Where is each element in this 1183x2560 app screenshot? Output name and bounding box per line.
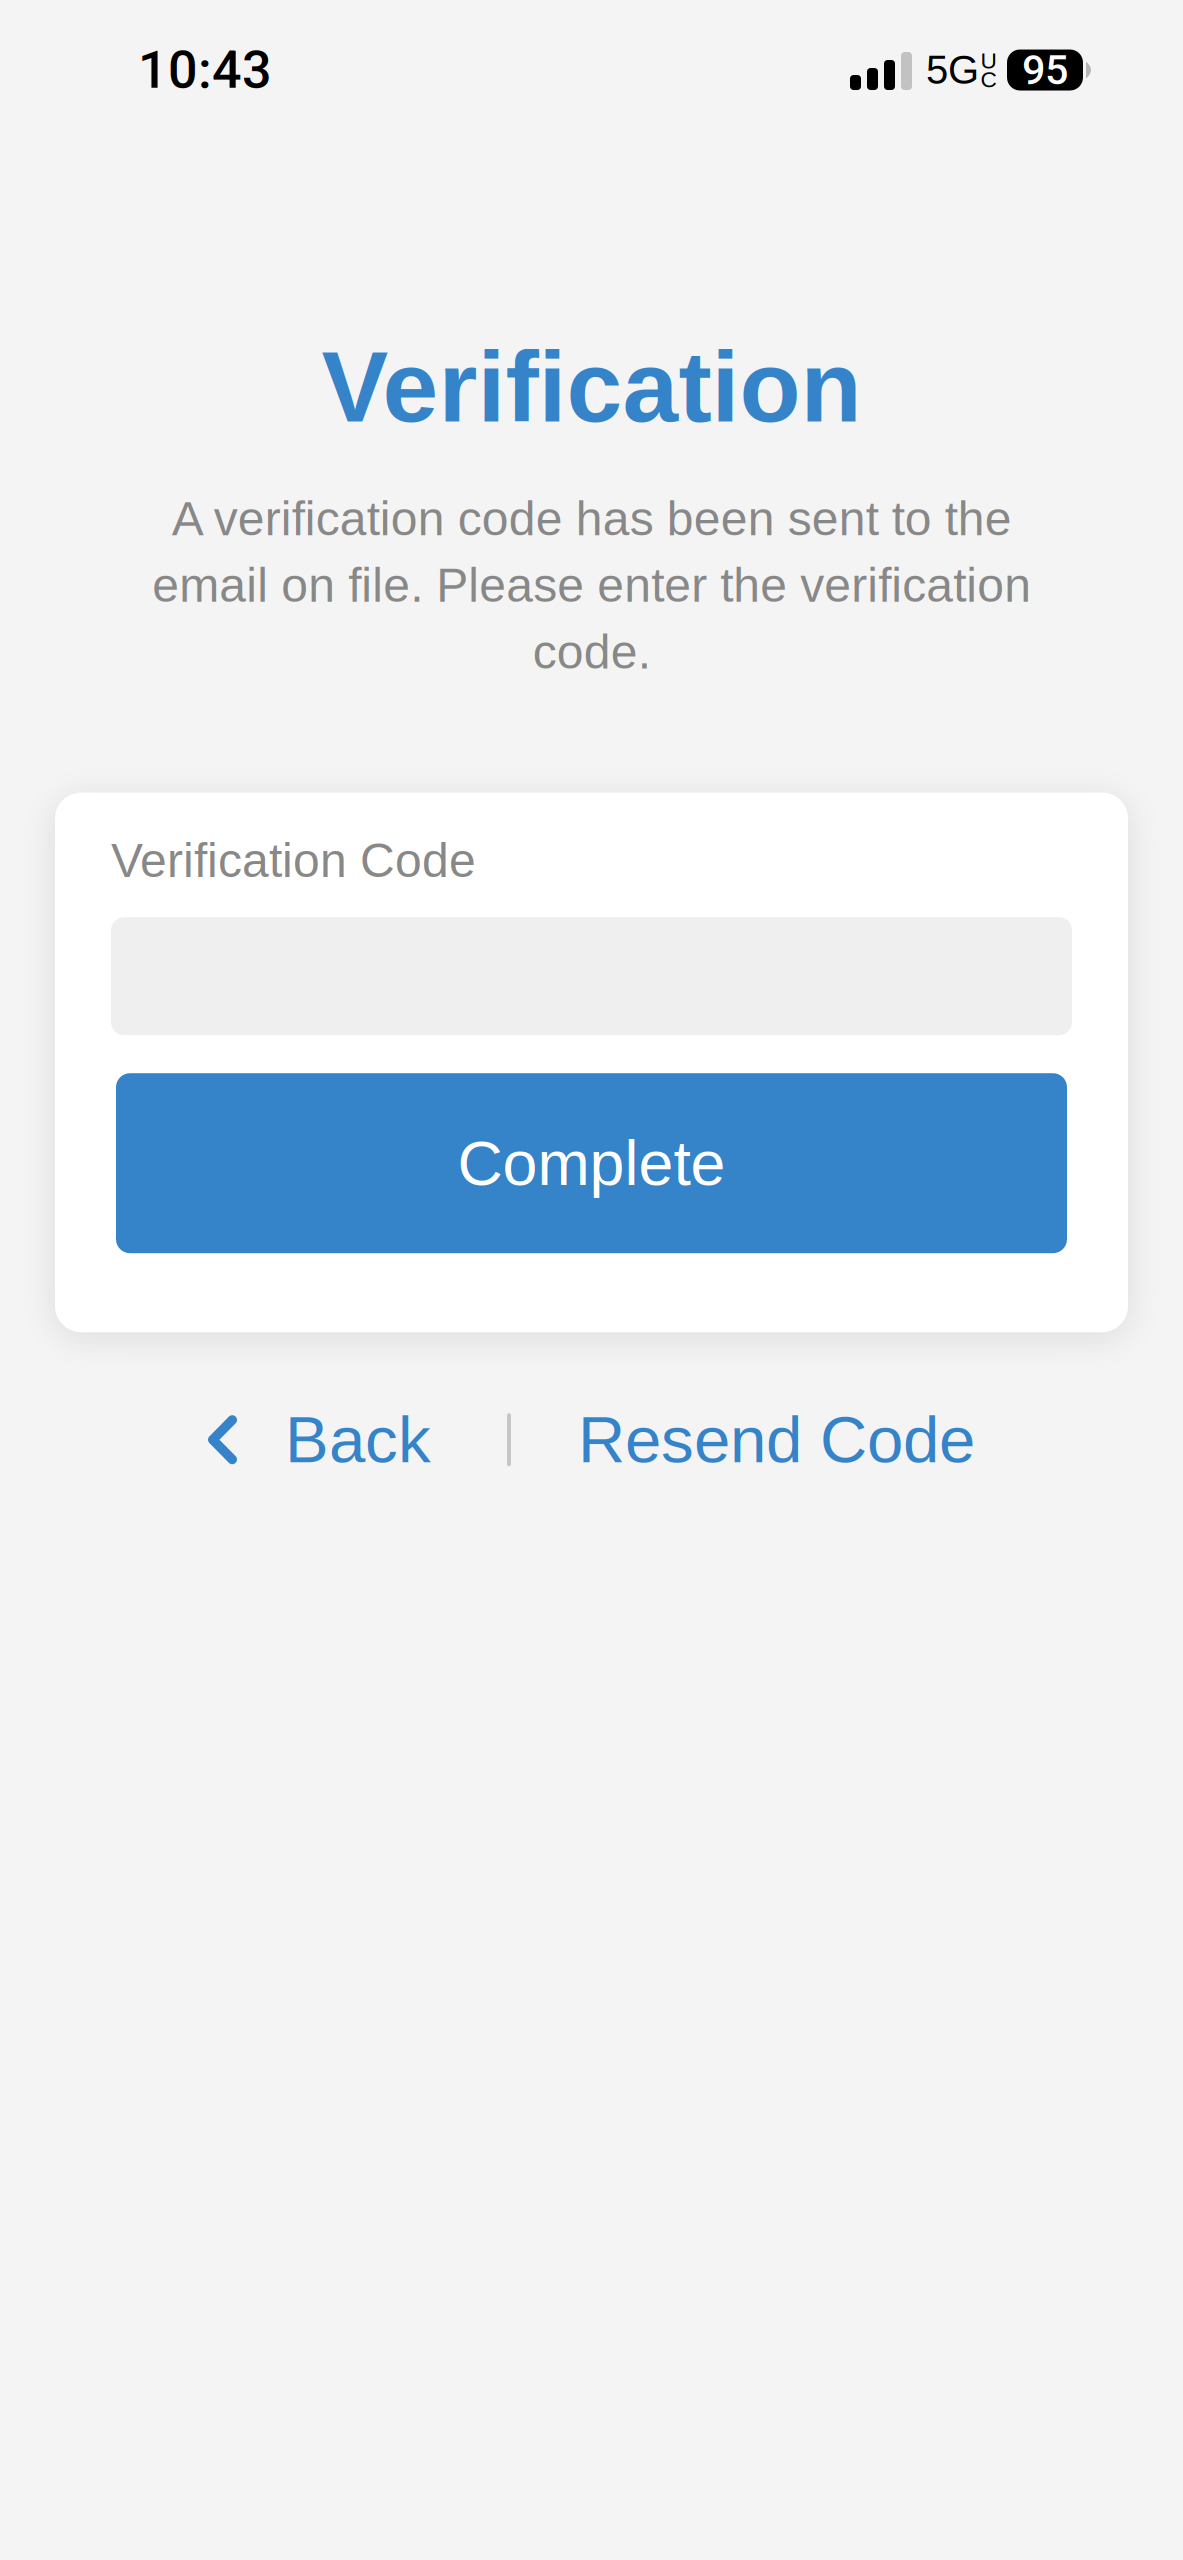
staticText: 95: [1022, 46, 1068, 94]
staticText: Complete: [457, 1128, 725, 1198]
staticText: Resend Code: [578, 1403, 975, 1476]
staticText: Back: [285, 1403, 431, 1476]
staticText: Verification: [321, 331, 861, 443]
staticText: Verification Code: [111, 834, 476, 887]
staticText: U: [980, 48, 996, 73]
button[interactable]: Resend Code: [578, 1403, 975, 1476]
staticText: A verification code has been sent to the…: [152, 492, 1031, 679]
button[interactable]: Complete: [116, 1073, 1067, 1253]
staticText: 5G: [926, 48, 979, 92]
staticText: 10:43: [138, 39, 272, 100]
staticText: C: [980, 67, 996, 92]
button[interactable]: Back: [208, 1403, 431, 1476]
